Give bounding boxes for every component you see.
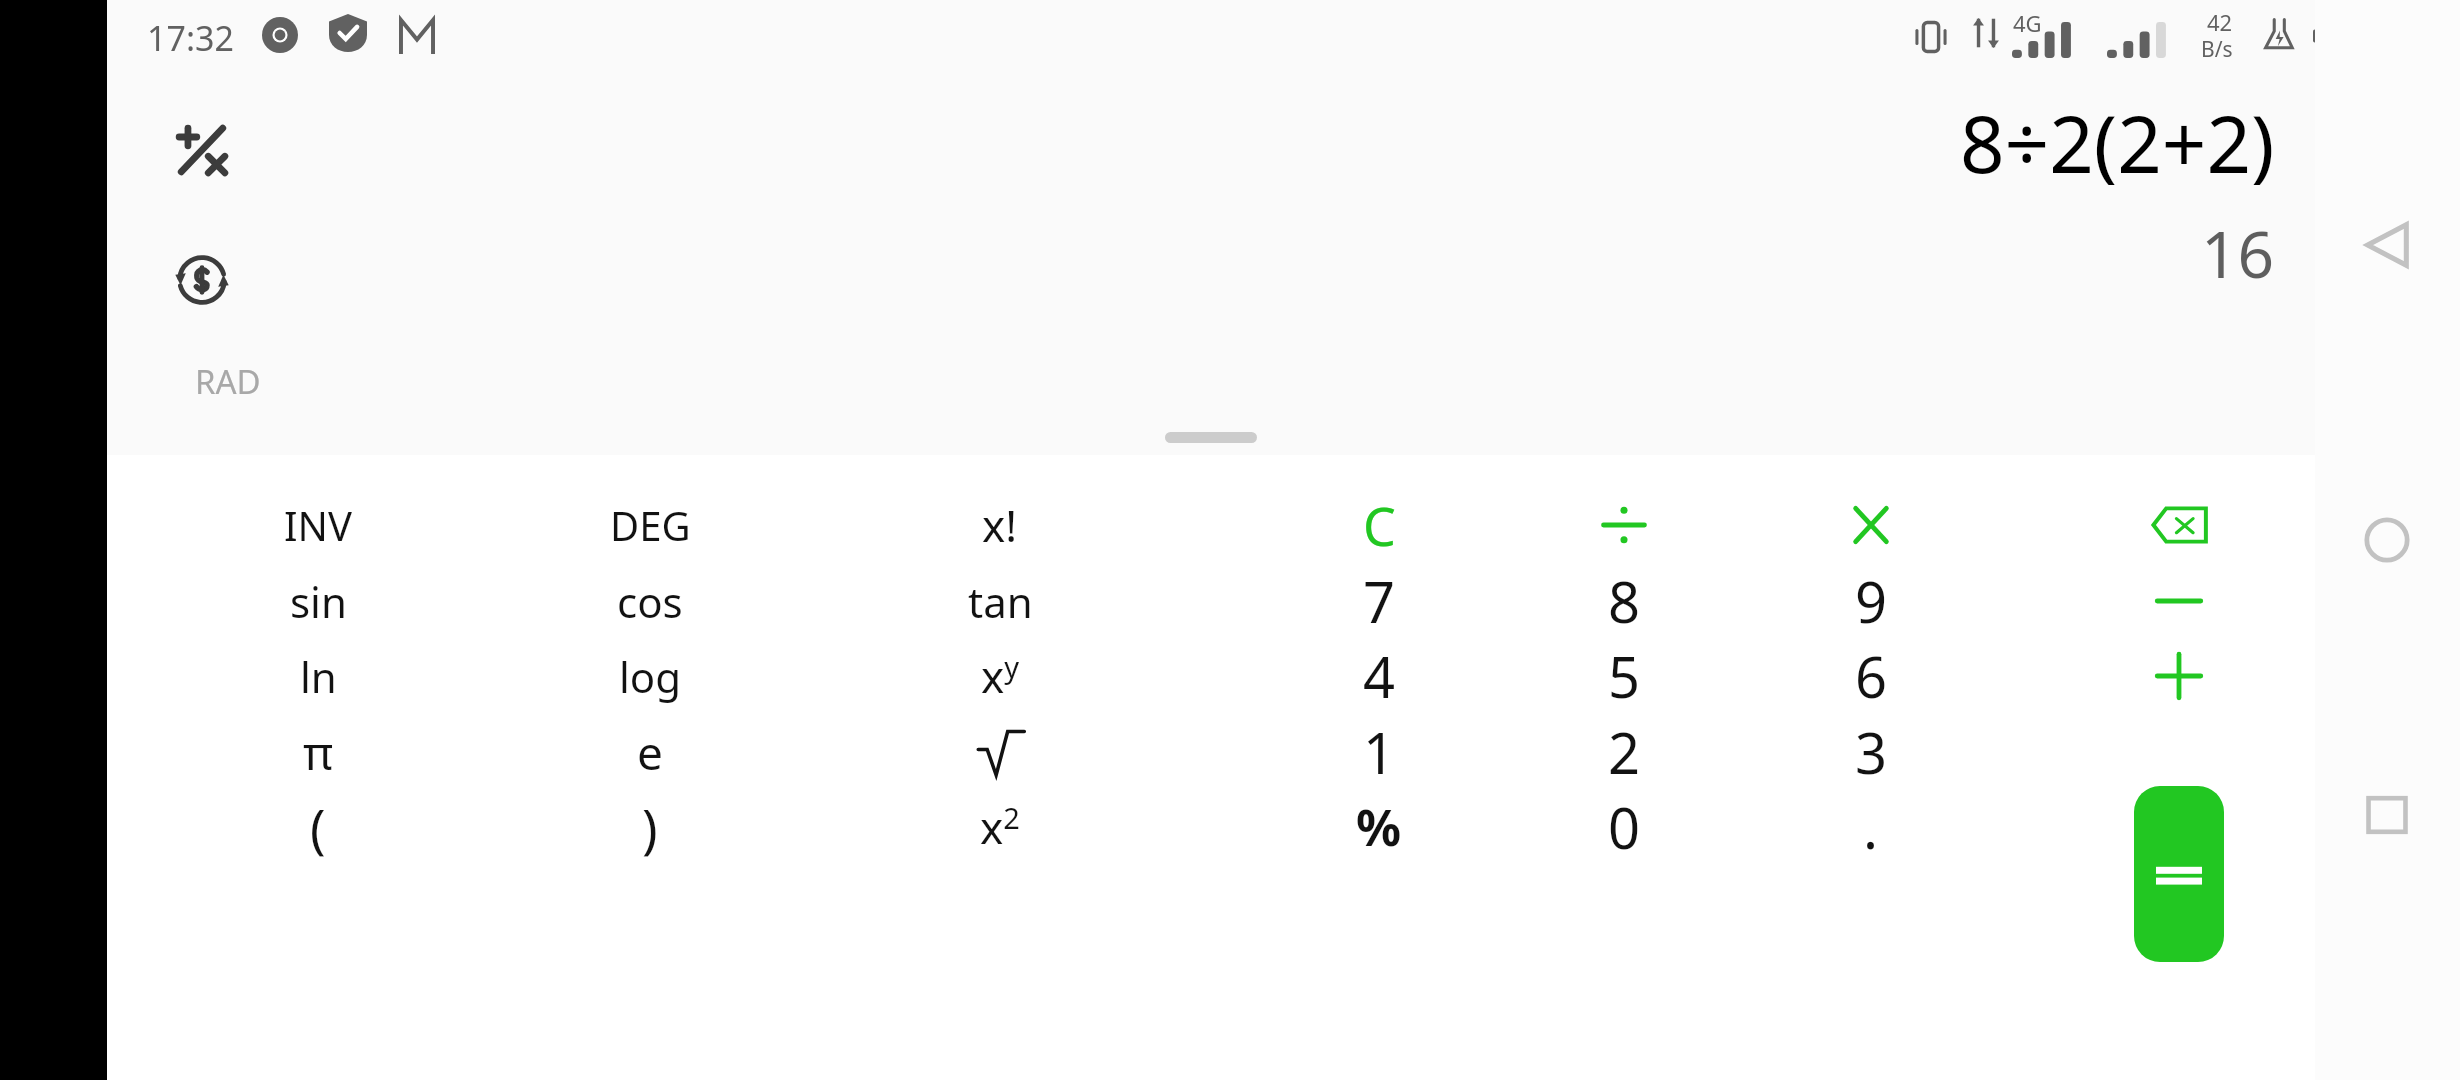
staticText: 4 (1363, 638, 1396, 714)
staticText: π (303, 721, 334, 784)
staticText: INV (284, 498, 352, 552)
staticText: 5 (1608, 638, 1641, 714)
staticText: log (619, 648, 682, 705)
staticText: 1 (1363, 714, 1396, 790)
button[interactable]: Recent apps (2347, 775, 2427, 855)
staticText: 8 (1608, 563, 1641, 639)
button[interactable]: % (1279, 773, 1479, 881)
button[interactable]: Home (2347, 500, 2427, 580)
button[interactable]: Back (2347, 205, 2427, 285)
staticText: tan (968, 573, 1033, 630)
staticText: sin (290, 573, 347, 630)
button[interactable]: Multiply (1771, 471, 1971, 579)
button[interactable]: . (1771, 773, 1971, 881)
button[interactable]: xy (900, 622, 1100, 730)
staticText: DEG (610, 498, 691, 552)
button[interactable]: ln (218, 622, 418, 730)
button[interactable]: 0 (1524, 773, 1724, 881)
button[interactable]: Math functions (160, 108, 244, 192)
button[interactable]: tan (900, 547, 1100, 655)
button[interactable]: 1 (1279, 698, 1479, 806)
staticText: RAD (195, 359, 261, 404)
button[interactable]: 3 (1771, 698, 1971, 806)
staticText: ( (310, 792, 326, 863)
staticText: . (1863, 789, 1879, 865)
staticText: 4G (2013, 8, 2042, 38)
button[interactable]: Currency converter (160, 238, 244, 322)
staticText: 9 (1855, 563, 1888, 639)
staticText: % (1356, 793, 1402, 861)
staticText: 3 (1855, 714, 1888, 790)
button[interactable]: Minus (2079, 547, 2279, 655)
staticText: x! (982, 495, 1018, 555)
button[interactable]: Divide (1524, 471, 1724, 579)
staticText: 8÷2(2+2) (1960, 90, 2275, 196)
staticText: 16 (2201, 210, 2275, 297)
button[interactable]: π (218, 698, 418, 806)
button[interactable]: sin (218, 547, 418, 655)
button[interactable]: ( (218, 773, 418, 881)
staticText: B/s (2201, 35, 2233, 64)
button[interactable]: 4 (1279, 622, 1479, 730)
button[interactable]: RAD (155, 350, 265, 412)
staticText: ) (642, 792, 658, 863)
button[interactable]: Equals (2134, 786, 2224, 962)
staticText: xy (981, 646, 1020, 706)
staticText: e (637, 721, 663, 784)
staticText: 0 (1608, 789, 1641, 865)
staticText: x2 (980, 797, 1020, 857)
button[interactable]: Backspace (2079, 471, 2279, 579)
button[interactable]: 7 (1279, 547, 1479, 655)
button[interactable]: 2 (1524, 698, 1724, 806)
button[interactable]: x! (900, 471, 1100, 579)
button[interactable]: 9 (1771, 547, 1971, 655)
button[interactable]: C (1279, 471, 1479, 579)
button[interactable]: DEG (550, 471, 750, 579)
button[interactable]: cos (550, 547, 750, 655)
button[interactable]: 6 (1771, 622, 1971, 730)
button[interactable]: ) (550, 773, 750, 881)
button[interactable]: 8 (1524, 547, 1724, 655)
staticText: 6 (1855, 638, 1888, 714)
staticText: 2 (1608, 714, 1641, 790)
button[interactable]: INV (218, 471, 418, 579)
button[interactable]: x2 (900, 773, 1100, 881)
button[interactable]: log (550, 622, 750, 730)
staticText: 7 (1363, 563, 1396, 639)
staticText: 17:32 (147, 15, 234, 61)
button[interactable]: 5 (1524, 622, 1724, 730)
button[interactable]: Square root (900, 698, 1100, 806)
staticText: C (1363, 490, 1396, 561)
staticText: ln (300, 648, 337, 705)
button[interactable]: Plus (2079, 622, 2279, 730)
staticText: cos (617, 573, 683, 630)
staticText: 42 (2207, 7, 2233, 37)
button[interactable]: e (550, 698, 750, 806)
